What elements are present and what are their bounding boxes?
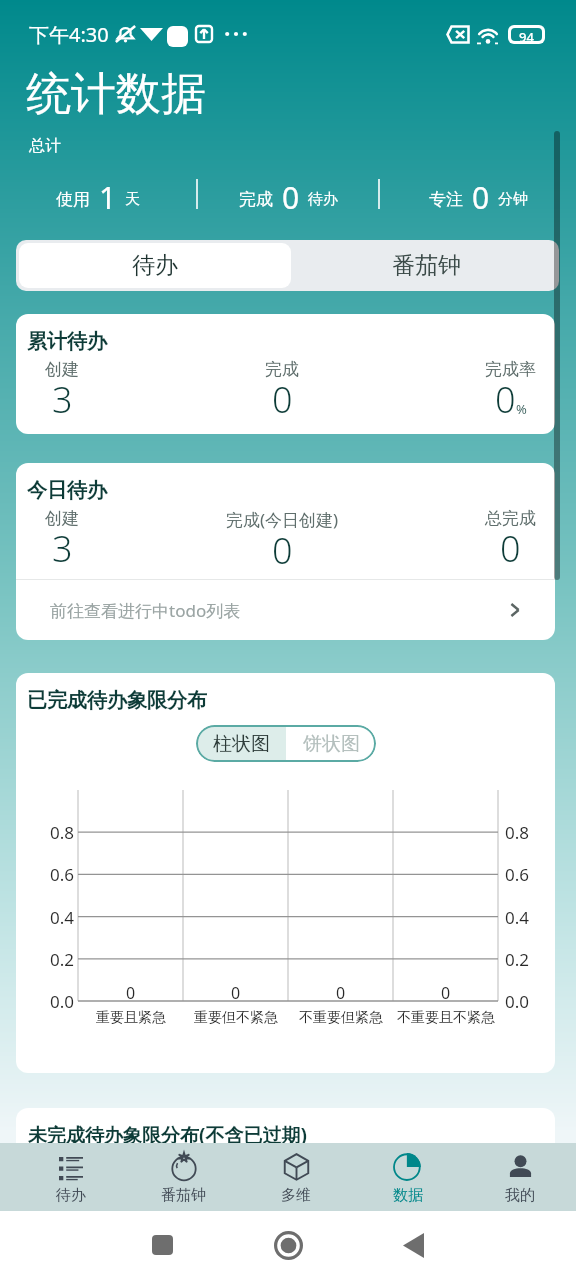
staticText: 3 (52, 375, 73, 424)
staticText: 番茄钟 (392, 251, 461, 280)
staticText: 待办 (56, 1186, 86, 1205)
staticText: 未完成待办象限分布(不含已过期) (28, 1122, 307, 1148)
staticText: 番茄钟 (161, 1186, 206, 1205)
button[interactable]: 我的 (464, 1149, 576, 1205)
button[interactable]: Back (382, 1214, 444, 1276)
button[interactable]: 饼状图 (286, 725, 376, 762)
staticText: 总完成 (485, 508, 536, 529)
staticText: 0.4 (505, 906, 530, 929)
staticText: 0 (495, 375, 516, 424)
staticText: 0 (500, 524, 521, 573)
button[interactable]: 多维 (240, 1149, 352, 1205)
staticText: 0 (336, 982, 346, 1004)
staticText: 分钟 (498, 190, 528, 209)
staticText: 不重要且不紧急 (397, 1009, 495, 1027)
staticText: 0.4 (50, 906, 75, 929)
staticText: 下午4:30 (29, 21, 109, 48)
button[interactable]: 待办 (14, 1149, 127, 1205)
staticText: 0.8 (50, 821, 75, 844)
staticText: 今日待办 (27, 478, 107, 503)
staticText: 0 (441, 982, 451, 1004)
staticText: 94 (519, 28, 534, 41)
staticText: 多维 (281, 1186, 311, 1205)
staticText: 创建 (45, 508, 79, 529)
staticText: 完成(今日创建) (226, 508, 339, 531)
staticText: 创建 (45, 359, 79, 380)
staticText: 3 (52, 524, 73, 573)
button[interactable]: Home (257, 1214, 319, 1276)
button[interactable]: 柱状图 (196, 725, 286, 762)
staticText: % (516, 400, 527, 418)
button[interactable]: Recents (131, 1214, 193, 1276)
staticText: 0 (126, 982, 136, 1004)
button[interactable]: 番茄钟 (127, 1149, 240, 1205)
staticText: 前往查看进行中todo列表 (50, 599, 241, 622)
button[interactable]: 待办 (19, 243, 291, 288)
staticText: 0.6 (50, 863, 75, 886)
staticText: 重要且紧急 (96, 1009, 166, 1027)
staticText: 完成率 (485, 359, 536, 380)
staticText: 完成 (239, 189, 273, 210)
button[interactable]: 番茄钟 (294, 240, 559, 291)
staticText: 专注 (429, 189, 463, 210)
staticText: 完成 (265, 359, 299, 380)
staticText: 统计数据 (26, 66, 206, 123)
button[interactable]: 数据 (352, 1149, 464, 1205)
staticText: 已完成待办象限分布 (27, 688, 207, 713)
staticText: 0.0 (505, 990, 530, 1013)
staticText: 天 (125, 190, 140, 209)
staticText: 饼状图 (303, 732, 360, 756)
staticText: 数据 (393, 1186, 423, 1205)
staticText: 累计待办 (27, 329, 107, 354)
staticText: 0 (272, 526, 293, 575)
button[interactable]: 前往查看进行中todo列表 (16, 580, 555, 640)
staticText: 不重要但紧急 (299, 1009, 383, 1027)
staticText: 0 (231, 982, 241, 1004)
staticText: 待办 (308, 190, 338, 209)
staticText: 重要但不紧急 (194, 1009, 278, 1027)
staticText: 总计 (29, 136, 61, 156)
staticText: 柱状图 (213, 732, 270, 756)
staticText: 1 (99, 177, 117, 211)
staticText: 0 (472, 177, 490, 211)
staticText: 我的 (505, 1186, 535, 1205)
staticText: 0.0 (50, 990, 75, 1013)
staticText: 0.2 (505, 948, 530, 971)
staticText: 待办 (132, 251, 178, 280)
staticText: 0 (272, 375, 293, 424)
staticText: 0 (282, 177, 300, 211)
staticText: 0.8 (505, 821, 530, 844)
staticText: 0.2 (50, 948, 75, 971)
staticText: 使用 (56, 189, 90, 210)
staticText: 0.6 (505, 863, 530, 886)
